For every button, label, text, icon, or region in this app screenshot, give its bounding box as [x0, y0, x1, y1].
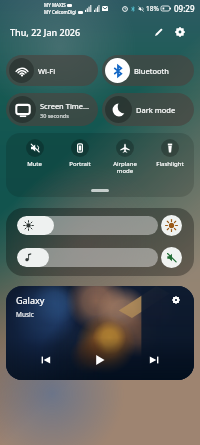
staticText: 18%: [146, 4, 159, 13]
staticText: Portrait: [69, 160, 91, 168]
staticText: MY MAXIS: [44, 2, 66, 8]
button[interactable]: Next: [145, 351, 163, 369]
button[interactable]: Play: [90, 350, 110, 370]
staticText: 09:29: [174, 3, 195, 14]
staticText: Thu, 22 Jan 2026: [10, 26, 81, 38]
button[interactable]: Screen Time...: [6, 93, 98, 126]
button[interactable]: Previous: [37, 351, 55, 369]
staticText: Wi-Fi: [38, 66, 56, 76]
button[interactable]: [17, 248, 158, 267]
button[interactable]: Portrait: [57, 139, 102, 168]
staticText: Dark mode: [136, 105, 176, 115]
button[interactable]: [17, 216, 158, 235]
staticText: Screen Time...: [40, 101, 90, 111]
staticText: Mute: [27, 160, 42, 168]
button[interactable]: Bluetooth: [102, 55, 194, 86]
button[interactable]: Flashlight: [147, 139, 192, 168]
button[interactable]: Mute: [12, 139, 57, 168]
button[interactable]: Media settings: [170, 294, 182, 306]
button[interactable]: Toggle: [161, 247, 182, 268]
staticText: Galaxy: [16, 294, 45, 306]
button[interactable]: Airplane mode: [102, 139, 147, 175]
staticText: Flashlight: [156, 160, 184, 168]
staticText: Bluetooth: [134, 66, 169, 76]
staticText: Music: [16, 310, 34, 319]
staticText: 30 seconds: [40, 112, 69, 119]
button[interactable]: Toggle: [161, 215, 182, 236]
button[interactable]: Wi-Fi: [6, 55, 98, 86]
button[interactable]: Galaxy: [6, 286, 194, 380]
staticText: Airplane mode: [113, 160, 137, 175]
button[interactable]: Settings: [170, 22, 190, 42]
staticText: MY CelcomDigi: [44, 9, 77, 15]
button[interactable]: Dark mode: [102, 93, 194, 126]
button[interactable]: Edit: [149, 22, 169, 42]
